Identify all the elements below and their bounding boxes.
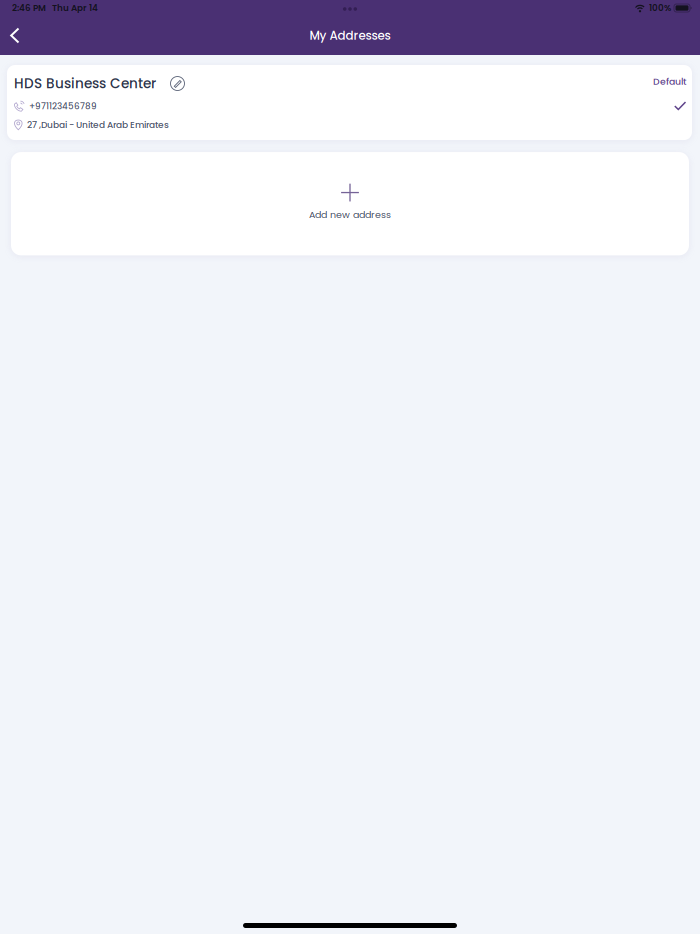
staticText: 2:46 PM [12,2,46,14]
staticText: Thu Apr 14 [52,2,98,14]
button[interactable]: Back [0,18,30,52]
staticText: 100% [649,2,671,14]
staticText: 27 ,Dubai - United Arab Emirates [27,118,169,131]
staticText: HDS Business Center [14,74,156,93]
button[interactable]: Add new address [11,152,689,255]
staticText: Add new address [309,208,391,221]
staticText: My Addresses [309,27,390,44]
staticText: +971123456789 [29,100,97,112]
staticText: Default [653,75,686,88]
button[interactable]: HDS Business Center [7,65,692,140]
